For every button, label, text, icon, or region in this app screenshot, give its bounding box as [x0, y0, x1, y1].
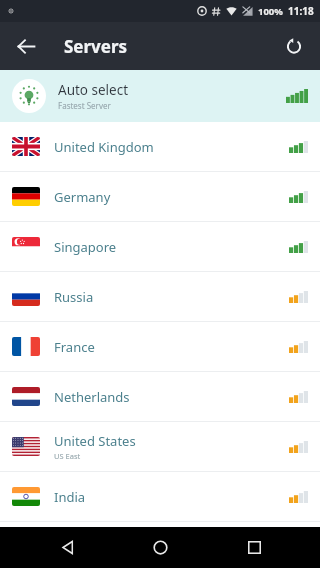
- staticText: Netherlands: [54, 388, 130, 406]
- button[interactable]: Netherlands: [0, 372, 320, 421]
- button[interactable]: France: [0, 322, 320, 371]
- staticText: Russia: [54, 288, 94, 306]
- staticText: India: [54, 488, 86, 506]
- button[interactable]: Singapore: [0, 222, 320, 271]
- staticText: 11:18: [288, 4, 314, 18]
- staticText: United Kingdom: [54, 138, 154, 156]
- button[interactable]: Home: [133, 527, 187, 568]
- button[interactable]: United States: [0, 422, 320, 471]
- staticText: Servers: [64, 35, 128, 58]
- button[interactable]: Back: [6, 26, 46, 66]
- button[interactable]: Recent apps: [227, 527, 281, 568]
- staticText: France: [54, 338, 95, 356]
- staticText: Singapore: [54, 238, 117, 256]
- button[interactable]: Auto select: [0, 70, 320, 122]
- button[interactable]: Refresh: [274, 26, 314, 66]
- button[interactable]: Germany: [0, 172, 320, 221]
- staticText: 100%: [258, 5, 283, 18]
- button[interactable]: Back: [40, 527, 94, 568]
- button[interactable]: India: [0, 472, 320, 521]
- staticText: United States: [54, 432, 136, 450]
- staticText: Germany: [54, 188, 111, 206]
- staticText: Auto select: [58, 81, 129, 99]
- staticText: Fastest Server: [58, 100, 111, 111]
- button[interactable]: Russia: [0, 272, 320, 321]
- button[interactable]: United Kingdom: [0, 122, 320, 171]
- staticText: US East: [54, 451, 81, 461]
